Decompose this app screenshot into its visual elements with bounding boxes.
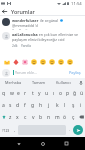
staticText: 2dk [12, 44, 18, 48]
staticText: z [9, 114, 12, 121]
button[interactable]: i [77, 99, 85, 111]
button[interactable]: ?123 [0, 123, 12, 137]
button[interactable]: Kullanıcı [51, 78, 76, 87]
button[interactable]: e [15, 87, 22, 99]
button[interactable]: Merhaba [0, 78, 26, 87]
staticText: f [24, 102, 26, 109]
button[interactable]: ü [78, 87, 85, 99]
staticText: ı [53, 90, 55, 97]
button[interactable]: Emoji [65, 57, 74, 66]
staticText: ç [72, 114, 75, 121]
button[interactable]: Voice input [76, 78, 85, 87]
button[interactable]: g [29, 99, 37, 111]
staticText: Yorumlar [11, 8, 35, 15]
staticText: y [38, 90, 41, 97]
button[interactable]: b [37, 111, 45, 123]
button[interactable]: q [0, 87, 8, 99]
button[interactable]: Emoji [29, 57, 38, 66]
staticText: Paylaş [69, 70, 81, 75]
staticText: l [64, 102, 66, 109]
staticText: u [45, 90, 49, 97]
staticText: v [32, 114, 35, 121]
button[interactable]: c [21, 111, 29, 123]
button[interactable]: Tamam [26, 78, 51, 87]
staticText: m [55, 114, 60, 121]
staticText: ğ [73, 90, 77, 97]
staticText: d [16, 102, 20, 109]
staticText: g [31, 102, 35, 109]
button[interactable]: u [43, 87, 50, 99]
staticText: i [80, 102, 82, 109]
button[interactable]: Emoji [20, 57, 29, 66]
staticText: t [32, 90, 34, 97]
button[interactable]: t [29, 87, 36, 99]
button[interactable]: Back [0, 7, 9, 15]
staticText: Tamam [32, 80, 46, 85]
button[interactable]: Emoji [2, 57, 11, 66]
staticText: s [9, 102, 12, 109]
button[interactable]: Send [73, 125, 83, 135]
staticText: h [39, 102, 43, 109]
button[interactable]: Emoji [11, 57, 20, 66]
button[interactable]: a [0, 99, 7, 111]
button[interactable]: ş [69, 99, 77, 111]
button[interactable]: Emoji [56, 57, 65, 66]
button[interactable]: Emoji [38, 57, 47, 66]
button[interactable]: f [21, 99, 29, 111]
staticText: ü [80, 90, 84, 97]
staticText: 11:54 [71, 1, 82, 7]
staticText: aaiLaSonuolsa en çok bun ellerinize ve p… [12, 32, 82, 42]
button[interactable]: y [36, 87, 43, 99]
staticText: w [10, 90, 14, 97]
button[interactable]: h [37, 99, 45, 111]
staticText: j [48, 102, 50, 109]
button[interactable]: n [45, 111, 53, 123]
staticText: a [2, 102, 5, 109]
button[interactable]: ö [61, 111, 69, 123]
staticText: 3s [12, 29, 16, 30]
staticText: r [24, 90, 27, 97]
button[interactable]: v [29, 111, 37, 123]
staticText: n [47, 114, 51, 121]
button[interactable]: o [57, 87, 64, 99]
button[interactable]: Emoji [47, 57, 56, 66]
staticText: @mmmaddd 'd [12, 23, 38, 28]
button[interactable]: Recents [61, 138, 72, 149]
button[interactable]: Back [13, 138, 24, 149]
button[interactable]: , [12, 123, 18, 137]
staticText: Merhaba [5, 80, 22, 85]
button[interactable]: x [14, 111, 21, 123]
staticText: ş [72, 102, 75, 109]
button[interactable]: r [22, 87, 29, 99]
button[interactable]: k [53, 99, 61, 111]
staticText: ile orgünal [40, 18, 59, 23]
button[interactable]: p [64, 87, 71, 99]
button[interactable]: ı [50, 87, 57, 99]
button[interactable]: Home [37, 138, 48, 149]
button[interactable]: w [8, 87, 15, 99]
staticText: p [66, 90, 70, 97]
staticText: . [69, 127, 71, 133]
staticText: Kullanıcı [56, 80, 71, 85]
button[interactable]: m [53, 111, 61, 123]
staticText: ö [63, 114, 67, 121]
staticText: q [2, 90, 6, 97]
button[interactable]: z [7, 111, 14, 123]
staticText: o [59, 90, 63, 97]
button[interactable]: Backspace [77, 111, 85, 123]
button[interactable]: Paylaş [67, 69, 83, 76]
button[interactable]: Shift [0, 111, 7, 123]
staticText: k [56, 102, 59, 109]
staticText: Yorum ekle… [15, 70, 37, 75]
button[interactable]: ç [69, 111, 77, 123]
staticText: Yanıtla [21, 44, 31, 48]
staticText: b [39, 114, 43, 121]
button[interactable]: s [7, 99, 14, 111]
button[interactable]: j [45, 99, 53, 111]
button[interactable]: d [14, 99, 21, 111]
button[interactable]: l [61, 99, 69, 111]
staticText: c [24, 114, 27, 121]
button[interactable]: ğ [71, 87, 78, 99]
